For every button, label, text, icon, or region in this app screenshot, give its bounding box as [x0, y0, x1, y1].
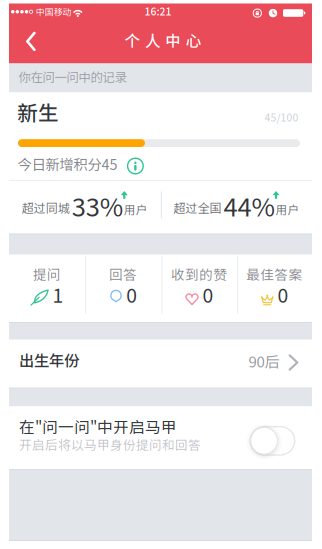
- staticText: 0: [126, 280, 137, 308]
- staticText: 90后: [249, 350, 280, 372]
- staticText: 0: [277, 280, 288, 308]
- staticText: 用户: [124, 201, 148, 218]
- staticText: 新生: [17, 97, 59, 126]
- button[interactable]: 开启马甲: [250, 427, 295, 455]
- staticText: 出生年份: [19, 349, 79, 371]
- staticText: 超过全国: [174, 199, 222, 216]
- staticText: 中: [165, 29, 181, 51]
- button[interactable]: Back: [16, 25, 46, 58]
- staticText: 16:21: [144, 3, 171, 18]
- staticText: 回答: [109, 264, 137, 284]
- staticText: 44%: [224, 187, 275, 224]
- staticText: 1: [52, 280, 63, 308]
- button[interactable]: 出生年份: [9, 340, 312, 387]
- staticText: 中国移动: [36, 5, 72, 18]
- staticText: 你在问一问中的记录: [18, 68, 126, 86]
- staticText: 开启后将以马甲身份提问和回答: [19, 435, 201, 453]
- staticText: 个: [124, 29, 140, 51]
- staticText: 33%: [72, 187, 123, 224]
- staticText: 提问: [33, 264, 61, 284]
- staticText: 心: [186, 29, 202, 51]
- staticText: 超过同城: [22, 199, 70, 216]
- staticText: 最佳答案: [246, 264, 302, 284]
- button[interactable]: 积分说明: [0, 0, 16, 16]
- staticText: 0: [202, 280, 213, 308]
- staticText: 今日新增积分45: [17, 153, 117, 174]
- staticText: 45/100: [264, 109, 298, 125]
- staticText: 用户: [276, 201, 300, 218]
- staticText: 在"问一问"中开启马甲: [19, 415, 177, 438]
- staticText: 收到的赞: [171, 264, 227, 284]
- staticText: 人: [145, 29, 161, 51]
